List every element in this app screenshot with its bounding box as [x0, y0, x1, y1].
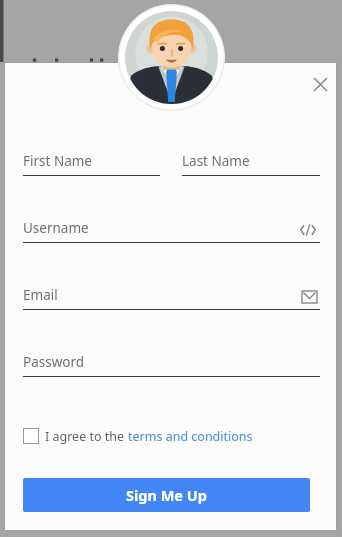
button[interactable]: Password [23, 352, 85, 372]
staticText: terms and conditions [128, 428, 253, 445]
button[interactable]: Sign Me Up [23, 478, 310, 512]
staticText: First Name [23, 152, 92, 170]
staticText: Password [23, 353, 85, 371]
button[interactable]: Last Name [182, 151, 250, 171]
staticText: Last Name [182, 152, 250, 170]
button[interactable]: Close [306, 70, 334, 98]
staticText: Email [23, 286, 58, 304]
button[interactable]: First Name [23, 151, 92, 171]
other: Email [300, 288, 318, 306]
staticText: Sign Me Up [126, 485, 207, 505]
button[interactable]: Email [23, 285, 58, 305]
staticText: Username [23, 219, 89, 237]
button[interactable]: Username [23, 218, 89, 238]
button[interactable]: I agree to the [20, 424, 253, 448]
staticText: I agree to the [45, 428, 128, 445]
other: Username [299, 221, 317, 239]
